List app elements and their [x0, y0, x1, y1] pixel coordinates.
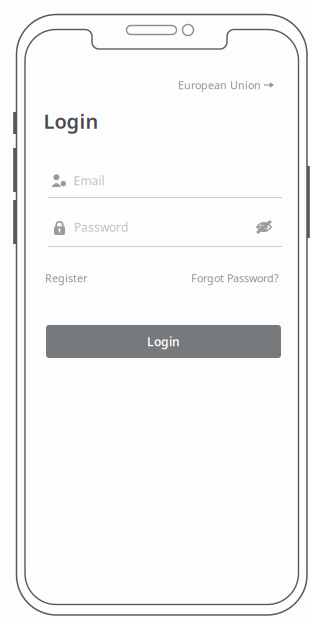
button[interactable]: Show password: [253, 217, 275, 237]
button[interactable]: Register: [45, 267, 87, 289]
button[interactable]: Forgot Password?: [191, 267, 279, 289]
button[interactable]: Login: [46, 325, 281, 358]
staticText: Email: [73, 172, 104, 188]
staticText: Forgot Password?: [191, 271, 279, 285]
staticText: European Union: [178, 78, 261, 92]
staticText: Register: [45, 271, 87, 285]
staticText: Password: [74, 219, 128, 235]
staticText: Login: [147, 333, 180, 349]
staticText: Login: [43, 108, 98, 134]
button[interactable]: European Union: [178, 74, 274, 96]
